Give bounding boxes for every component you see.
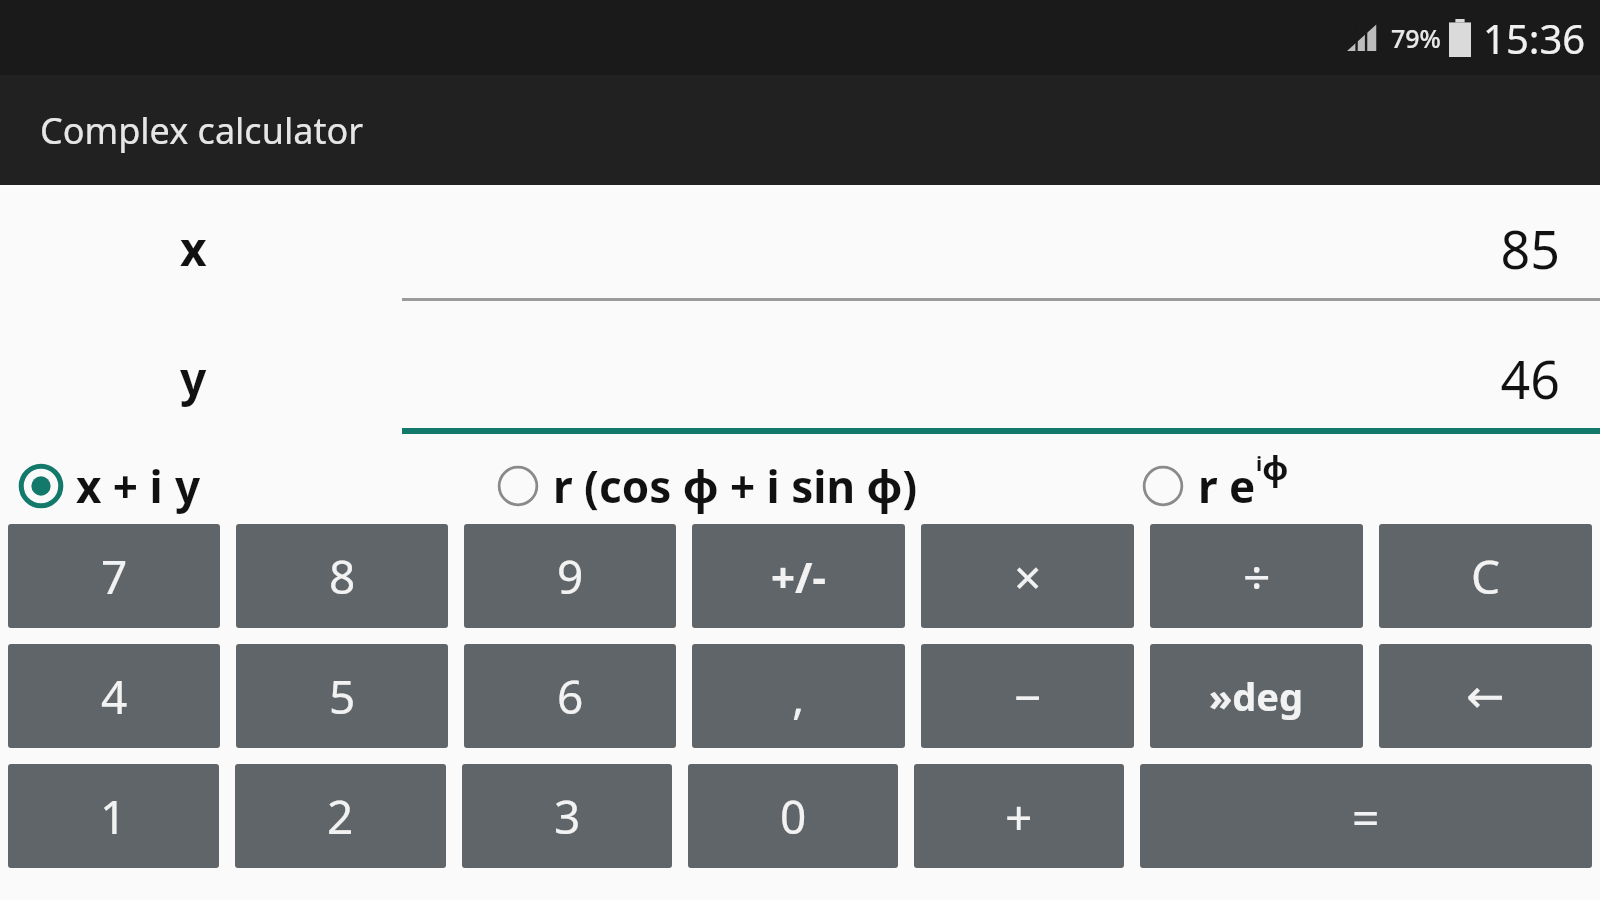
- staticText: ←: [1466, 669, 1505, 723]
- staticText: r e: [1198, 456, 1256, 516]
- staticText: ⁱφ: [1256, 446, 1289, 490]
- button[interactable]: 5: [236, 644, 448, 748]
- staticText: y: [175, 456, 201, 516]
- staticText: 6: [557, 665, 584, 728]
- staticText: 0: [780, 785, 807, 848]
- staticText: −: [1014, 664, 1042, 729]
- staticText: 4: [101, 665, 128, 728]
- staticText: 5: [329, 665, 356, 728]
- staticText: 2: [327, 785, 354, 848]
- button[interactable]: 46: [402, 343, 1600, 414]
- staticText: 1: [100, 785, 127, 848]
- staticText: ×: [1014, 544, 1042, 609]
- staticText: 7: [101, 545, 128, 608]
- staticText: »deg: [1209, 670, 1304, 722]
- staticText: 46: [402, 343, 1560, 414]
- staticText: 3: [554, 785, 581, 848]
- button[interactable]: Multiply: [921, 524, 1134, 628]
- button[interactable]: 6: [464, 644, 676, 748]
- staticText: y: [180, 347, 207, 410]
- staticText: ÷: [1243, 544, 1271, 609]
- button[interactable]: Sign: [692, 524, 905, 628]
- button[interactable]: 1: [8, 764, 219, 868]
- button[interactable]: 0: [688, 764, 898, 868]
- staticText: 8: [329, 545, 356, 608]
- button[interactable]: 2: [235, 764, 446, 868]
- button[interactable]: x + i: [0, 456, 477, 516]
- button[interactable]: ,: [692, 644, 905, 748]
- button[interactable]: r (cos φ + i sin φ): [477, 456, 1122, 516]
- button[interactable]: 7: [8, 524, 220, 628]
- button[interactable]: 4: [8, 644, 220, 748]
- staticText: Complex calculator: [40, 106, 364, 155]
- button[interactable]: 85: [402, 213, 1600, 284]
- button[interactable]: Backspace: [1379, 644, 1592, 748]
- button[interactable]: C: [1379, 524, 1592, 628]
- button[interactable]: Divide: [1150, 524, 1363, 628]
- button[interactable]: 8: [236, 524, 448, 628]
- staticText: 85: [402, 213, 1560, 284]
- staticText: C: [1471, 545, 1501, 608]
- staticText: 9: [557, 545, 584, 608]
- staticText: +/-: [771, 548, 826, 605]
- staticText: x: [180, 217, 207, 280]
- button[interactable]: r e: [1122, 456, 1600, 516]
- staticText: +: [1005, 784, 1033, 849]
- button[interactable]: Minus: [921, 644, 1134, 748]
- staticText: ,: [792, 665, 805, 728]
- staticText: 15:36: [1483, 11, 1586, 65]
- staticText: x + i: [76, 456, 175, 516]
- staticText: =: [1352, 784, 1380, 849]
- button[interactable]: Equals: [1140, 764, 1592, 868]
- button[interactable]: 9: [464, 524, 676, 628]
- button[interactable]: 3: [462, 764, 672, 868]
- button[interactable]: »deg: [1150, 644, 1363, 748]
- button[interactable]: Plus: [914, 764, 1124, 868]
- staticText: r (cos φ + i sin φ): [553, 456, 918, 516]
- staticText: 79%: [1391, 21, 1441, 55]
